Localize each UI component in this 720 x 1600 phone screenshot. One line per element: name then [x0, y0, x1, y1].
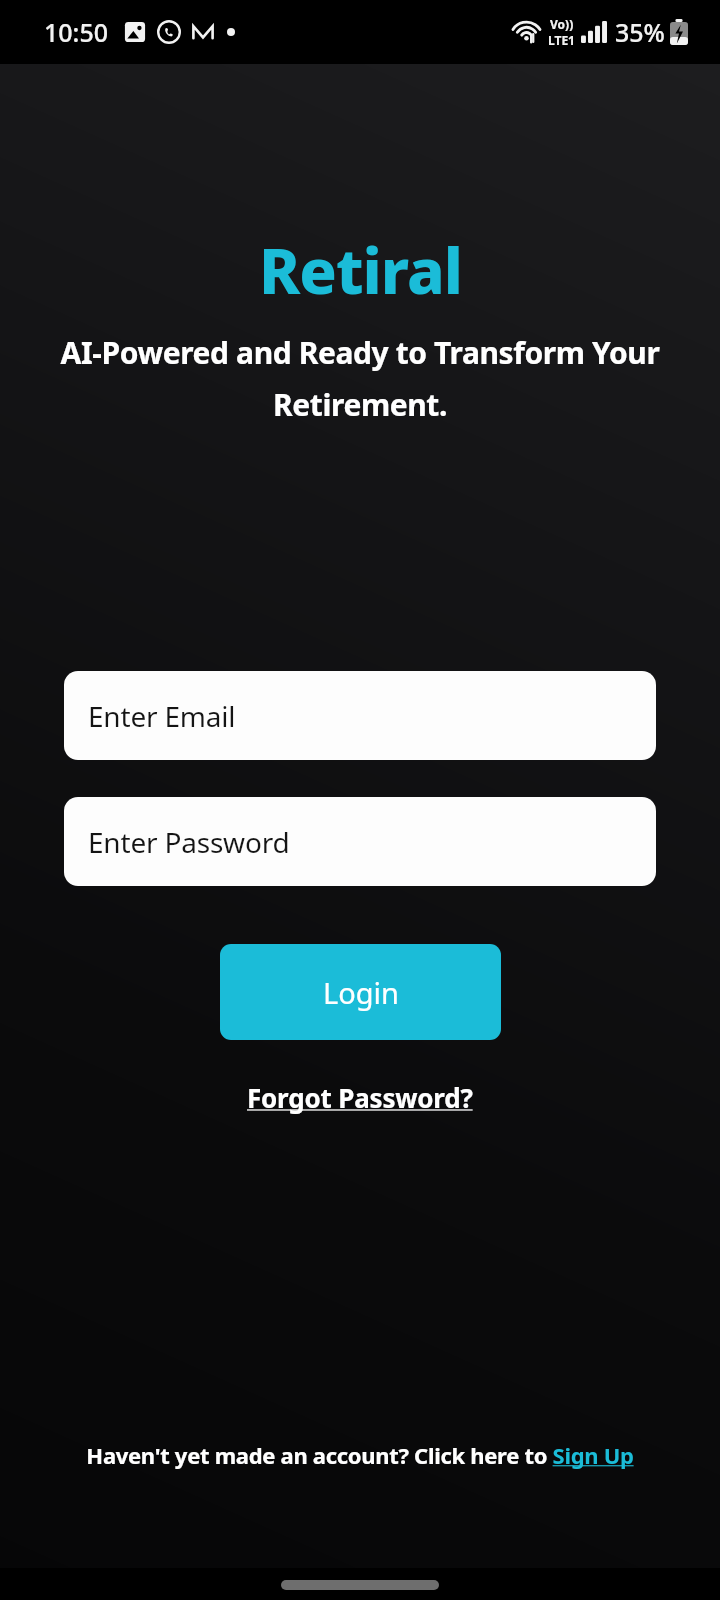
button[interactable]: Enter Password [64, 797, 656, 886]
staticText: LTE1 [548, 32, 575, 48]
button[interactable]: Login [220, 944, 501, 1040]
staticText: 10:50 [44, 15, 109, 49]
button[interactable]: Forgot Password? [239, 1076, 481, 1119]
staticText: Enter Password [88, 823, 290, 861]
staticText: Retiral [259, 228, 462, 312]
staticText: Forgot Password? [247, 1080, 473, 1115]
staticText: Enter Email [88, 697, 236, 735]
button[interactable]: Enter Email [64, 671, 656, 760]
staticText: Vo)) [550, 16, 574, 32]
staticText: AI-Powered and Ready to Transform Your R… [12, 332, 708, 425]
staticText: Haven't yet made an account? Click here … [86, 1440, 634, 1470]
button[interactable]: Haven't yet made an account? Click here … [82, 1436, 638, 1474]
staticText: Login [323, 973, 399, 1012]
staticText: 35% [615, 15, 665, 49]
